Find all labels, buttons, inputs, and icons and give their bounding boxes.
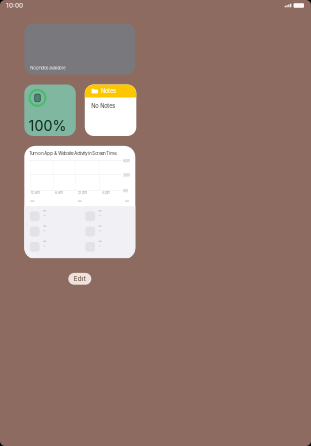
staticText: 6 am: [55, 190, 63, 195]
staticText: 60m: [123, 159, 130, 163]
staticText: No photos available: [30, 65, 65, 70]
staticText: Turn on App & Website Activity in Screen…: [29, 151, 117, 156]
staticText: 12 am: [31, 190, 40, 195]
staticText: 100%: [28, 117, 66, 134]
staticText: 6 pm: [102, 190, 110, 195]
staticText: Notes: [101, 88, 116, 94]
staticText: 0m: [123, 189, 128, 193]
button[interactable]: Edit: [68, 273, 91, 285]
button[interactable]: Turn on App & Website Activity in Screen…: [24, 146, 135, 259]
staticText: Edit: [74, 275, 86, 282]
button[interactable]: Notes: [85, 84, 136, 136]
button[interactable]: No photos available: [24, 23, 135, 74]
button[interactable]: 100%: [24, 84, 76, 136]
staticText: 12 pm: [78, 190, 87, 195]
staticText: 10:00: [6, 2, 23, 9]
staticText: 30m: [123, 173, 130, 177]
staticText: No Notes: [91, 102, 115, 109]
